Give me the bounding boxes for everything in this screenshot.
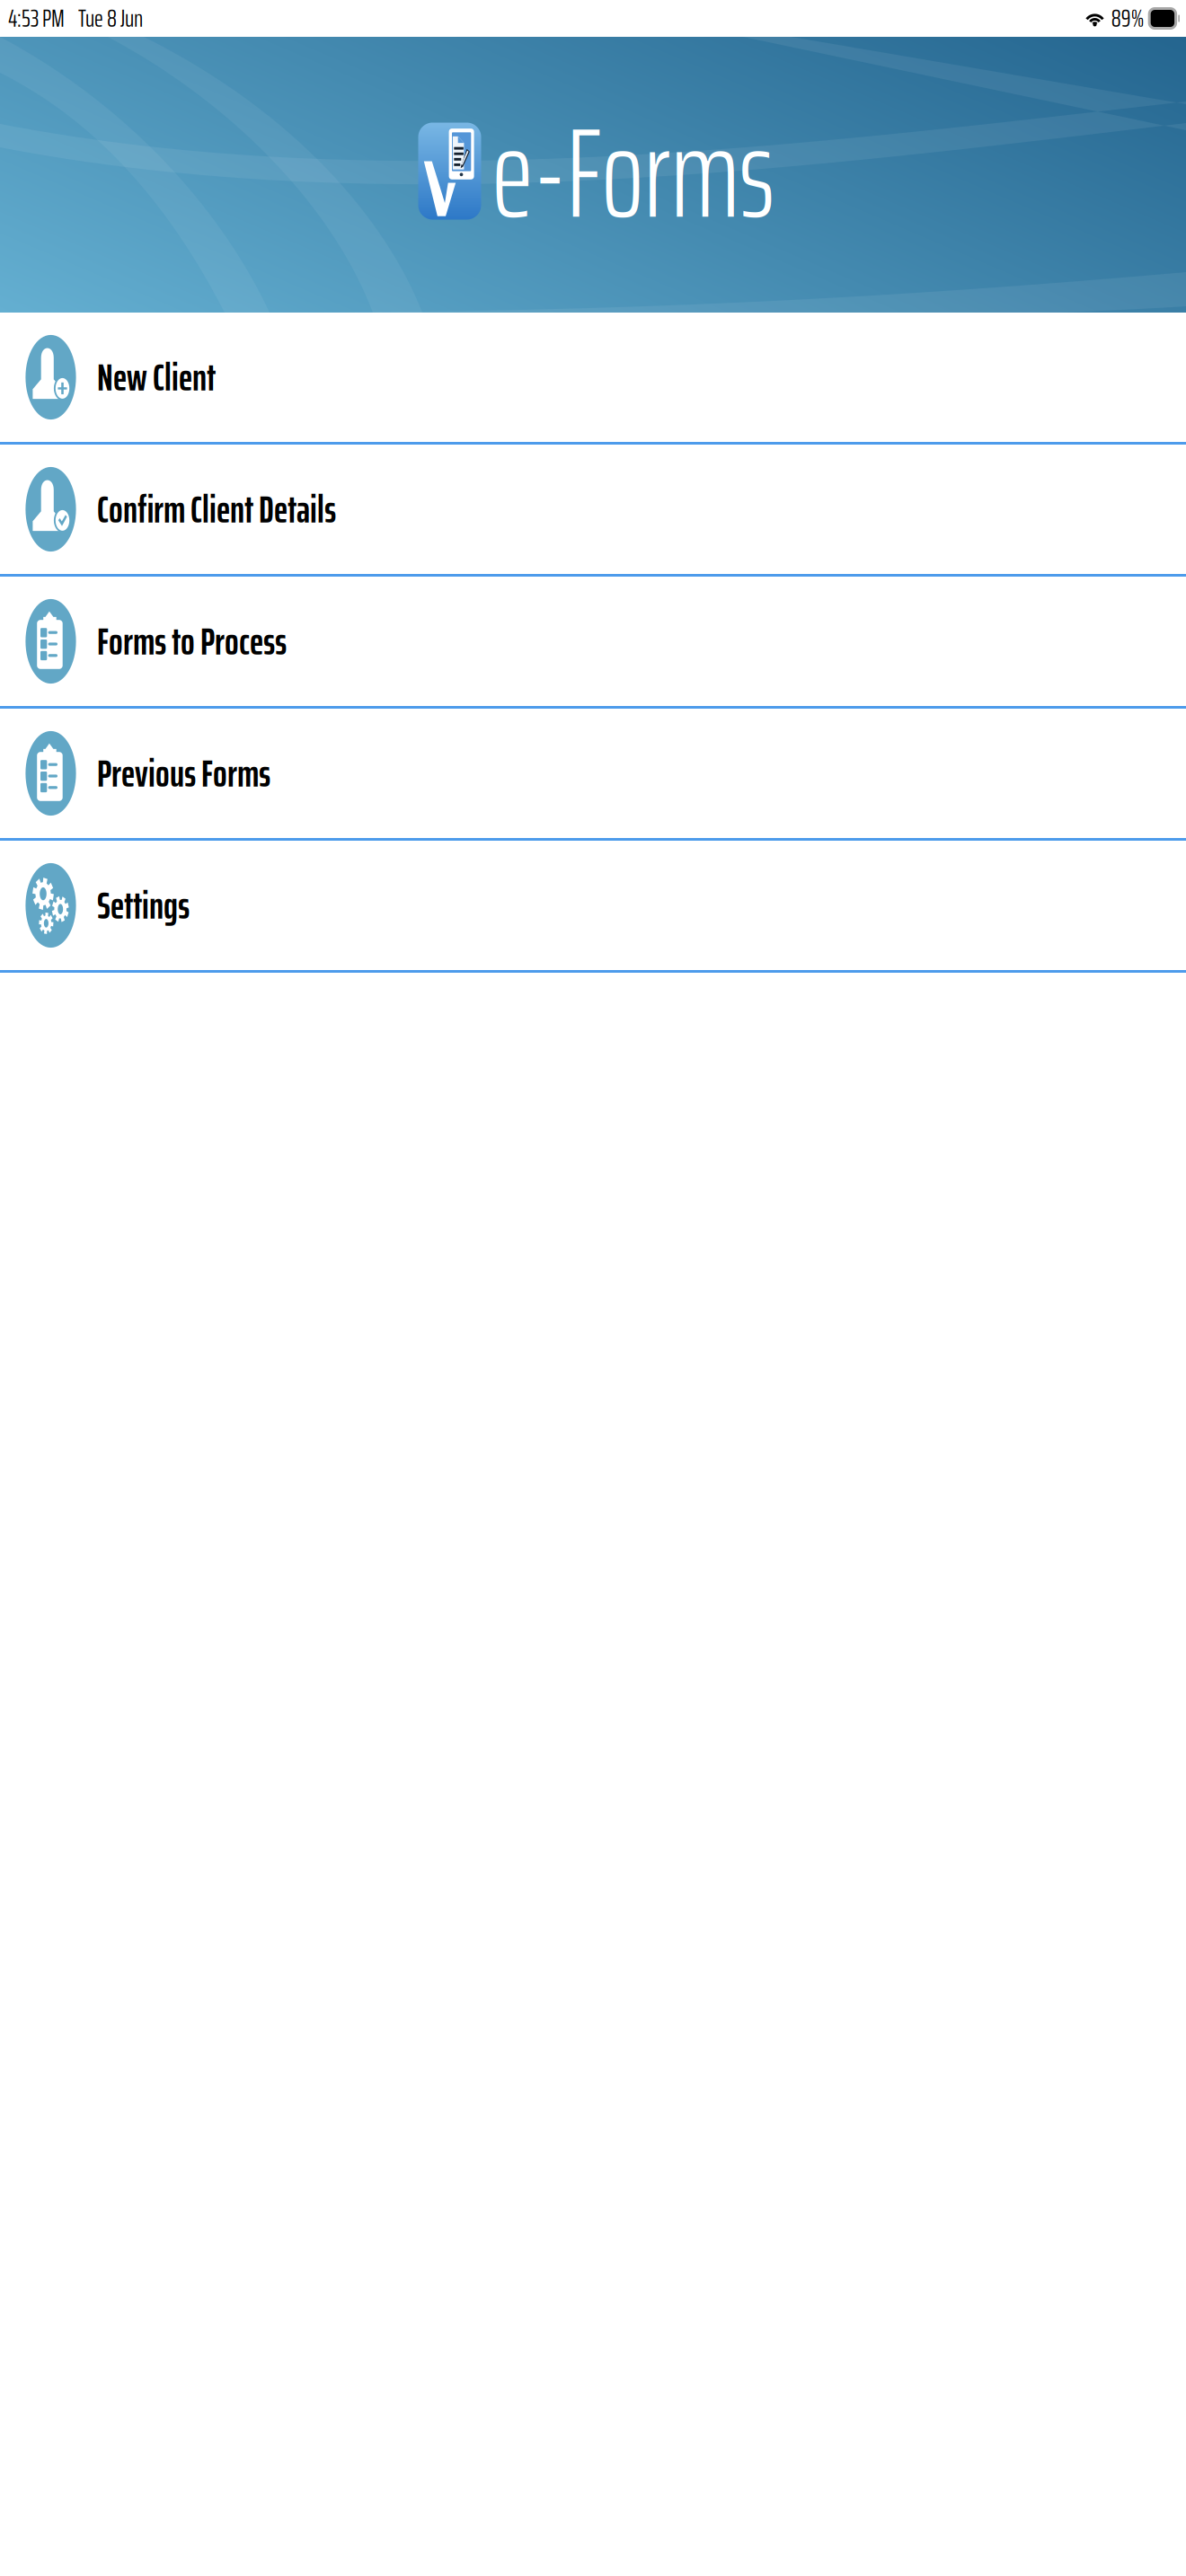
staticText: Settings [97, 875, 190, 936]
staticText: Confirm Client Details [97, 479, 336, 539]
staticText: e-Forms [492, 74, 774, 272]
staticText: Tue 8 Jun [78, 0, 143, 37]
button[interactable]: Previous Forms [0, 709, 1186, 838]
staticText: 89% [1111, 0, 1144, 37]
button[interactable]: Settings [0, 841, 1186, 970]
staticText: Forms to Process [97, 611, 287, 671]
button[interactable]: Confirm Client Details [0, 445, 1186, 574]
button[interactable]: Forms to Process [0, 577, 1186, 706]
button[interactable]: New Client [0, 313, 1186, 442]
staticText: 4:53 PM [8, 0, 65, 37]
staticText: New Client [97, 347, 216, 407]
staticText: Previous Forms [97, 743, 270, 804]
